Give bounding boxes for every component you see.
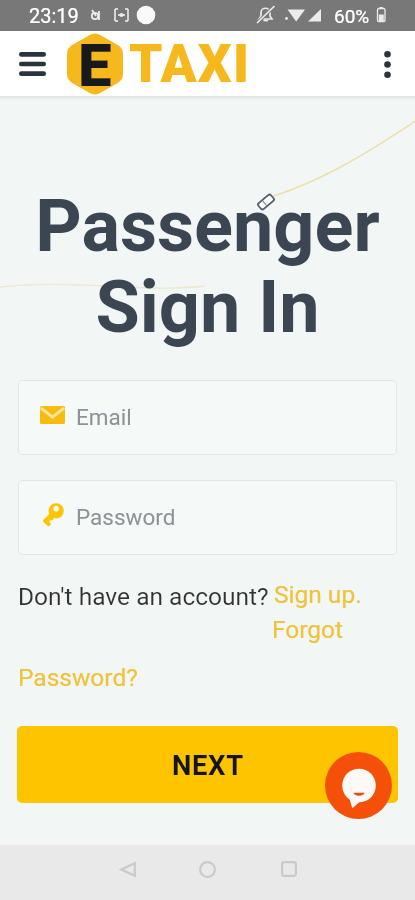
staticText: Email xyxy=(76,404,132,430)
staticText: Password xyxy=(76,504,176,530)
staticText: NEXT xyxy=(172,749,244,781)
button[interactable]: Email xyxy=(18,380,397,455)
button[interactable]: NEXT xyxy=(17,726,398,803)
staticText: Password? xyxy=(18,663,138,692)
staticText: TAXI xyxy=(129,33,251,95)
staticText: Sign up. xyxy=(274,580,362,609)
staticText: Don't have an account? xyxy=(18,582,269,611)
button[interactable]: Chat support xyxy=(325,752,392,819)
button[interactable]: Back xyxy=(106,847,150,891)
staticText: Forgot xyxy=(272,615,344,644)
button[interactable]: Password? xyxy=(18,663,138,692)
button[interactable]: Recents xyxy=(267,847,311,891)
button[interactable]: Password xyxy=(18,480,397,555)
button[interactable]: Menu xyxy=(10,42,54,86)
staticText: E xyxy=(78,30,112,95)
staticText: Passenger Sign In xyxy=(0,184,415,350)
button[interactable]: More options xyxy=(365,42,409,86)
button[interactable]: Home xyxy=(185,847,229,891)
staticText: 23:19 xyxy=(29,4,79,27)
staticText: 60% xyxy=(334,5,370,27)
button[interactable]: Forgot xyxy=(272,615,344,644)
button[interactable]: Sign up. xyxy=(274,580,362,609)
